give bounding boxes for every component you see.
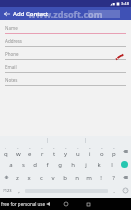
button[interactable]: Backspace (120, 145, 131, 158)
staticText: 1 (5, 146, 7, 149)
button[interactable]: Back (43, 199, 53, 209)
staticText: g (58, 161, 62, 169)
button[interactable]: 3 (24, 145, 36, 158)
button[interactable]: c (35, 171, 47, 184)
button[interactable]: ?123 (0, 184, 14, 197)
staticText: 9 (101, 146, 103, 149)
button[interactable]: l (105, 158, 118, 171)
button[interactable]: g (53, 158, 66, 171)
button[interactable]: x (23, 171, 35, 184)
staticText: ? (112, 174, 115, 182)
button[interactable]: , (14, 184, 24, 197)
button[interactable]: f (41, 158, 53, 171)
staticText: f (46, 161, 49, 169)
button[interactable]: Name (5, 23, 126, 36)
button[interactable]: m (83, 171, 95, 184)
staticText: 8 (89, 146, 91, 149)
staticText: Name (5, 25, 18, 31)
staticText: y (64, 150, 68, 158)
staticText: i (89, 150, 91, 158)
button[interactable]: 7 (72, 145, 84, 158)
staticText: h (71, 161, 75, 169)
staticText: . (113, 187, 115, 195)
staticText: Address (5, 38, 23, 44)
staticText: d (33, 161, 37, 169)
button[interactable]: Home (61, 199, 71, 209)
button[interactable]: a (5, 158, 17, 171)
button[interactable]: ? (107, 171, 119, 184)
staticText: n (75, 174, 79, 182)
button[interactable]: Recents (83, 199, 93, 209)
button[interactable]: . (109, 184, 119, 197)
staticText: 3:48 (121, 1, 129, 6)
button[interactable]: n (71, 171, 83, 184)
staticText: 3 (29, 146, 31, 149)
button[interactable]: Delete (119, 171, 131, 184)
staticText: ?123 (3, 188, 12, 193)
button[interactable]: 4 (36, 145, 48, 158)
button[interactable]: j (79, 158, 92, 171)
button[interactable]: Phone (5, 49, 126, 62)
button[interactable]: Address (5, 36, 126, 49)
staticText: , (18, 187, 20, 195)
staticText: Phone (5, 51, 19, 57)
button[interactable]: 6 (60, 145, 72, 158)
staticText: l (111, 161, 113, 169)
button[interactable]: Call (113, 50, 125, 62)
button[interactable]: 9 (96, 145, 108, 158)
staticText: o (100, 150, 104, 158)
staticText: x (27, 174, 31, 182)
button[interactable]: 0 (108, 145, 120, 158)
button[interactable]: s (17, 158, 29, 171)
staticText: k (97, 161, 101, 169)
staticText: 2 (17, 146, 19, 149)
staticText: r (41, 150, 44, 158)
staticText: w (16, 150, 21, 158)
staticText: Add Contact (13, 10, 49, 18)
staticText: p (112, 150, 116, 158)
button[interactable]: Back (0, 7, 13, 20)
button[interactable]: v (47, 171, 59, 184)
button[interactable]: Emoji (119, 184, 131, 197)
button[interactable]: Enter (118, 158, 131, 171)
staticText: e (28, 150, 32, 158)
button[interactable]: b (59, 171, 71, 184)
staticText: Notes (5, 77, 18, 83)
staticText: v (51, 174, 55, 182)
button[interactable]: d (29, 158, 41, 171)
staticText: m (86, 174, 92, 182)
button[interactable]: Notes (5, 75, 126, 88)
staticText: s (22, 161, 25, 169)
staticText: free for personal use (1, 201, 46, 207)
staticText: 5 (53, 146, 55, 149)
staticText: a (9, 161, 13, 169)
staticText: ! (100, 174, 102, 182)
button[interactable]: Shift (0, 171, 12, 184)
staticText: u (76, 150, 80, 158)
staticText: z (16, 174, 19, 182)
button[interactable]: 1 (0, 145, 12, 158)
staticText: b (63, 174, 67, 182)
button[interactable]: ! (95, 171, 107, 184)
button[interactable]: h (66, 158, 79, 171)
button[interactable]: k (92, 158, 105, 171)
button[interactable]: 8 (84, 145, 96, 158)
staticText: 0 (113, 146, 115, 149)
staticText: j (85, 161, 87, 169)
button[interactable]: 2 (12, 145, 24, 158)
staticText: 4 (41, 146, 43, 149)
staticText: q (4, 150, 8, 158)
staticText: 7 (77, 146, 79, 149)
button[interactable]: Email (5, 62, 126, 75)
button[interactable]: 5 (48, 145, 60, 158)
staticText: t (53, 150, 56, 158)
staticText: www.zdsoft.com (28, 8, 103, 20)
staticText: 6 (65, 146, 67, 149)
button[interactable]: z (12, 171, 23, 184)
staticText: c (40, 174, 43, 182)
staticText: Email (5, 64, 17, 70)
